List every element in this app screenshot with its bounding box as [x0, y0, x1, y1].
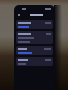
button[interactable]: [18, 36, 51, 40]
button[interactable]: [18, 51, 51, 55]
button[interactable]: [18, 62, 51, 66]
button[interactable]: [18, 57, 51, 62]
button[interactable]: Back: [17, 13, 21, 17]
button[interactable]: [18, 40, 51, 44]
button[interactable]: [18, 20, 51, 25]
button[interactable]: [18, 31, 51, 36]
button[interactable]: [18, 25, 51, 29]
button[interactable]: [18, 46, 51, 51]
